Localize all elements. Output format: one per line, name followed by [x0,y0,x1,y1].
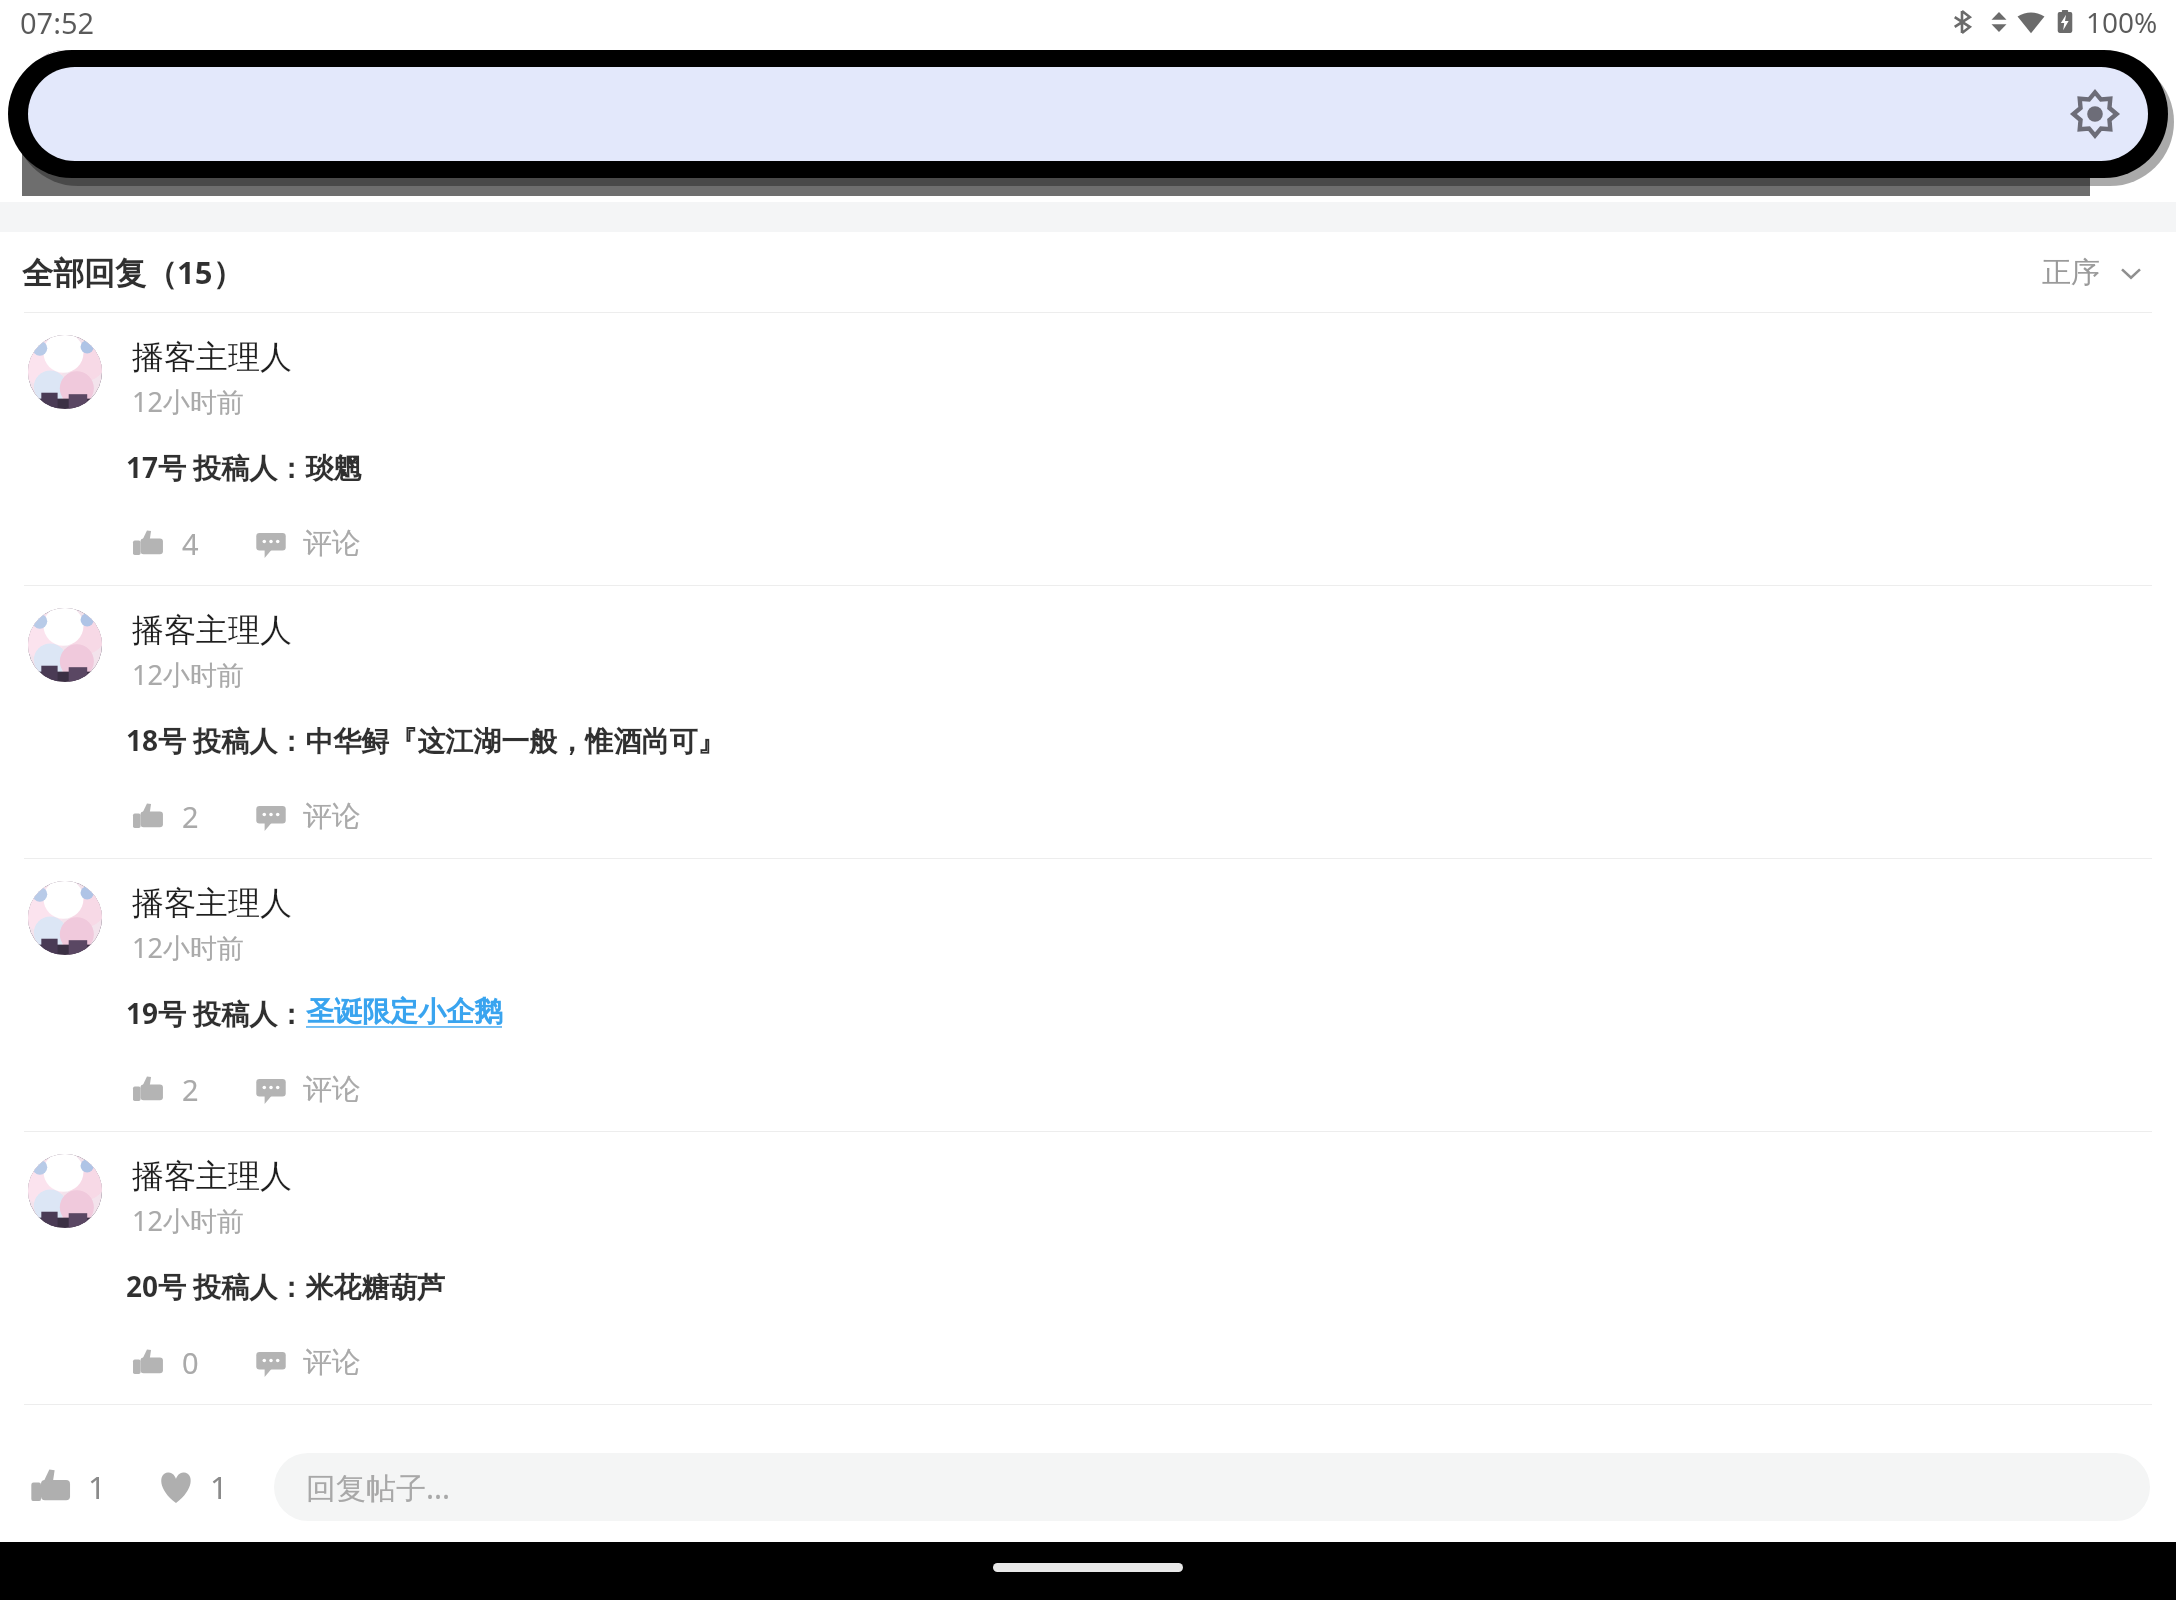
button[interactable]: 1 [24,1459,112,1515]
staticText: 1 [210,1466,228,1508]
staticText: 2 [182,797,199,836]
button[interactable]: 评论 [249,1067,367,1112]
button[interactable]: 圣诞限定小企鹅 [306,994,502,1029]
button[interactable]: 正序 [2034,248,2154,297]
staticText: 12小时前 [132,929,244,966]
staticText: 17号 投稿人：琰魍 [126,448,362,486]
staticText: 播客主理人 [132,337,292,377]
staticText: 18号 投稿人：中华鲟『这江湖一般，惟酒尚可』 [126,721,726,759]
button[interactable]: 2 [126,1066,205,1113]
staticText: 12小时前 [132,1202,244,1239]
staticText: 评论 [303,798,361,835]
staticText: 回复帖子... [306,1467,451,1508]
staticText: 播客主理人 [132,883,292,923]
staticText: 100% [2086,3,2158,41]
staticText: 播客主理人 [132,610,292,650]
staticText: 19号 投稿人： [126,994,306,1032]
button[interactable]: 评论 [249,1340,367,1385]
staticText: 1 [88,1466,106,1508]
staticText: 评论 [303,525,361,562]
staticText: 评论 [303,1344,361,1381]
button[interactable]: 播客主理人 [0,1132,2176,1404]
staticText: 正序 [2042,254,2100,291]
staticText: 07:52 [20,3,95,42]
button[interactable]: 1 [150,1460,234,1514]
staticText: 播客主理人 [132,1156,292,1196]
staticText: 12小时前 [132,656,244,693]
staticText: 2 [182,1070,199,1109]
button[interactable]: 回复帖子... [274,1453,2150,1521]
button[interactable]: Settings [2068,87,2122,141]
staticText: 20号 投稿人：米花糖葫芦 [126,1267,446,1305]
staticText: 12小时前 [132,383,244,420]
button[interactable]: 评论 [249,521,367,566]
button[interactable]: 2 [126,793,205,840]
button[interactable]: 播客主理人 [0,313,2176,585]
button[interactable]: 播客主理人 [0,859,2176,1131]
staticText: 4 [182,524,199,563]
button[interactable]: 0 [126,1339,205,1386]
button[interactable]: 播客主理人 [0,586,2176,858]
button[interactable]: Magnification window [8,50,2168,178]
staticText: 全部回复（15） [22,251,244,293]
staticText: 评论 [303,1071,361,1108]
button[interactable]: 4 [126,520,205,567]
staticText: 播客主理人 [130,50,295,92]
staticText: 0 [182,1343,199,1382]
button[interactable]: 评论 [249,794,367,839]
